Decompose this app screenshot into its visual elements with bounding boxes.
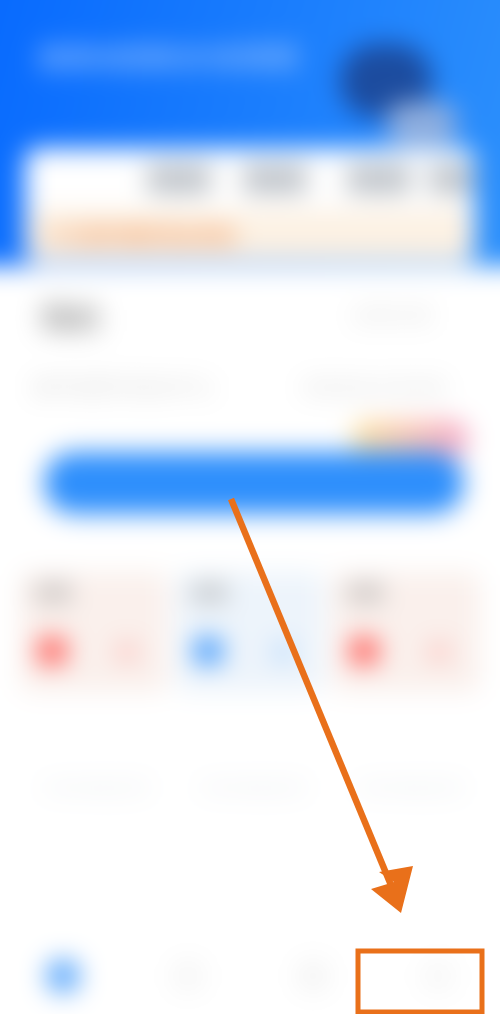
staticText: 标题 — [190, 582, 226, 605]
button[interactable]: 今日签到领取现金奖励 — [25, 210, 475, 262]
staticText: 内容标题说明 — [356, 777, 464, 800]
button[interactable]: entry — [429, 164, 475, 194]
staticText: 标题 — [34, 582, 70, 605]
button[interactable]: 我的 — [375, 938, 500, 1014]
staticText: 今日签到领取现金奖励 — [45, 224, 235, 248]
button[interactable] — [44, 452, 464, 514]
button[interactable]: 标题 — [332, 572, 480, 692]
button[interactable]: 消息 — [250, 938, 375, 1014]
staticText: 搜索你想要的内容看看 — [38, 42, 298, 75]
button[interactable]: entry — [147, 164, 211, 194]
button[interactable]: entry — [243, 164, 307, 194]
button[interactable]: entry — [347, 164, 411, 194]
staticText: 我的 — [40, 300, 100, 338]
button[interactable]: 首页 — [0, 938, 125, 1014]
button[interactable]: 标题 — [20, 572, 168, 692]
staticText: 标题 — [346, 582, 382, 605]
button[interactable]: 标题 — [176, 572, 324, 692]
